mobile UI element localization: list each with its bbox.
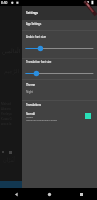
button[interactable] bbox=[22, 80, 97, 100]
button[interactable] bbox=[26, 45, 93, 52]
staticText: Abdull bbox=[26, 116, 33, 119]
button[interactable] bbox=[22, 31, 97, 58]
staticText: Translation font size bbox=[26, 60, 52, 64]
button[interactable] bbox=[26, 70, 93, 77]
staticText: Mahad Absaro Yeelayo Kuwa G waxa la bbox=[1, 102, 12, 126]
staticText: Translations bbox=[26, 103, 42, 107]
staticText: App Settings bbox=[26, 22, 42, 25]
button[interactable]: Home bbox=[33, 188, 65, 200]
button[interactable] bbox=[22, 58, 97, 79]
button[interactable]: Recents bbox=[65, 188, 97, 200]
button[interactable]: Back bbox=[0, 188, 33, 200]
staticText: Night bbox=[26, 90, 34, 94]
staticText: الْعَالَمِين bbox=[2, 48, 21, 54]
staticText: Settings bbox=[26, 11, 39, 15]
staticText: Arabic font size bbox=[26, 35, 47, 39]
staticText: Somali bbox=[26, 112, 36, 116]
staticText: Theme bbox=[26, 83, 36, 87]
staticText: Mahmud Mohammad Abdull bbox=[26, 119, 58, 122]
staticText: 8:50 bbox=[1, 1, 8, 5]
button[interactable] bbox=[22, 110, 97, 125]
